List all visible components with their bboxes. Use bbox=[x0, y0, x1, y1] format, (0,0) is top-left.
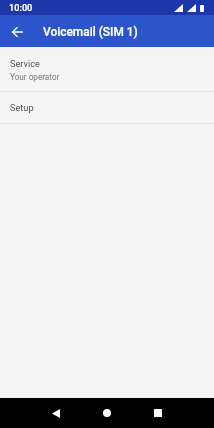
button[interactable]: Navigate up bbox=[5, 20, 29, 44]
staticText: Setup bbox=[10, 102, 34, 113]
button[interactable]: Recent apps bbox=[136, 398, 180, 428]
staticText: Voicemail (SIM 1) bbox=[43, 25, 138, 39]
button[interactable]: Service bbox=[0, 47, 214, 91]
button[interactable]: Setup bbox=[0, 92, 214, 123]
staticText: Service bbox=[10, 58, 40, 69]
button[interactable]: Home bbox=[85, 398, 129, 428]
staticText: 10:00 bbox=[9, 2, 33, 13]
staticText: Your operator bbox=[10, 72, 60, 82]
button[interactable]: Back bbox=[34, 398, 78, 428]
